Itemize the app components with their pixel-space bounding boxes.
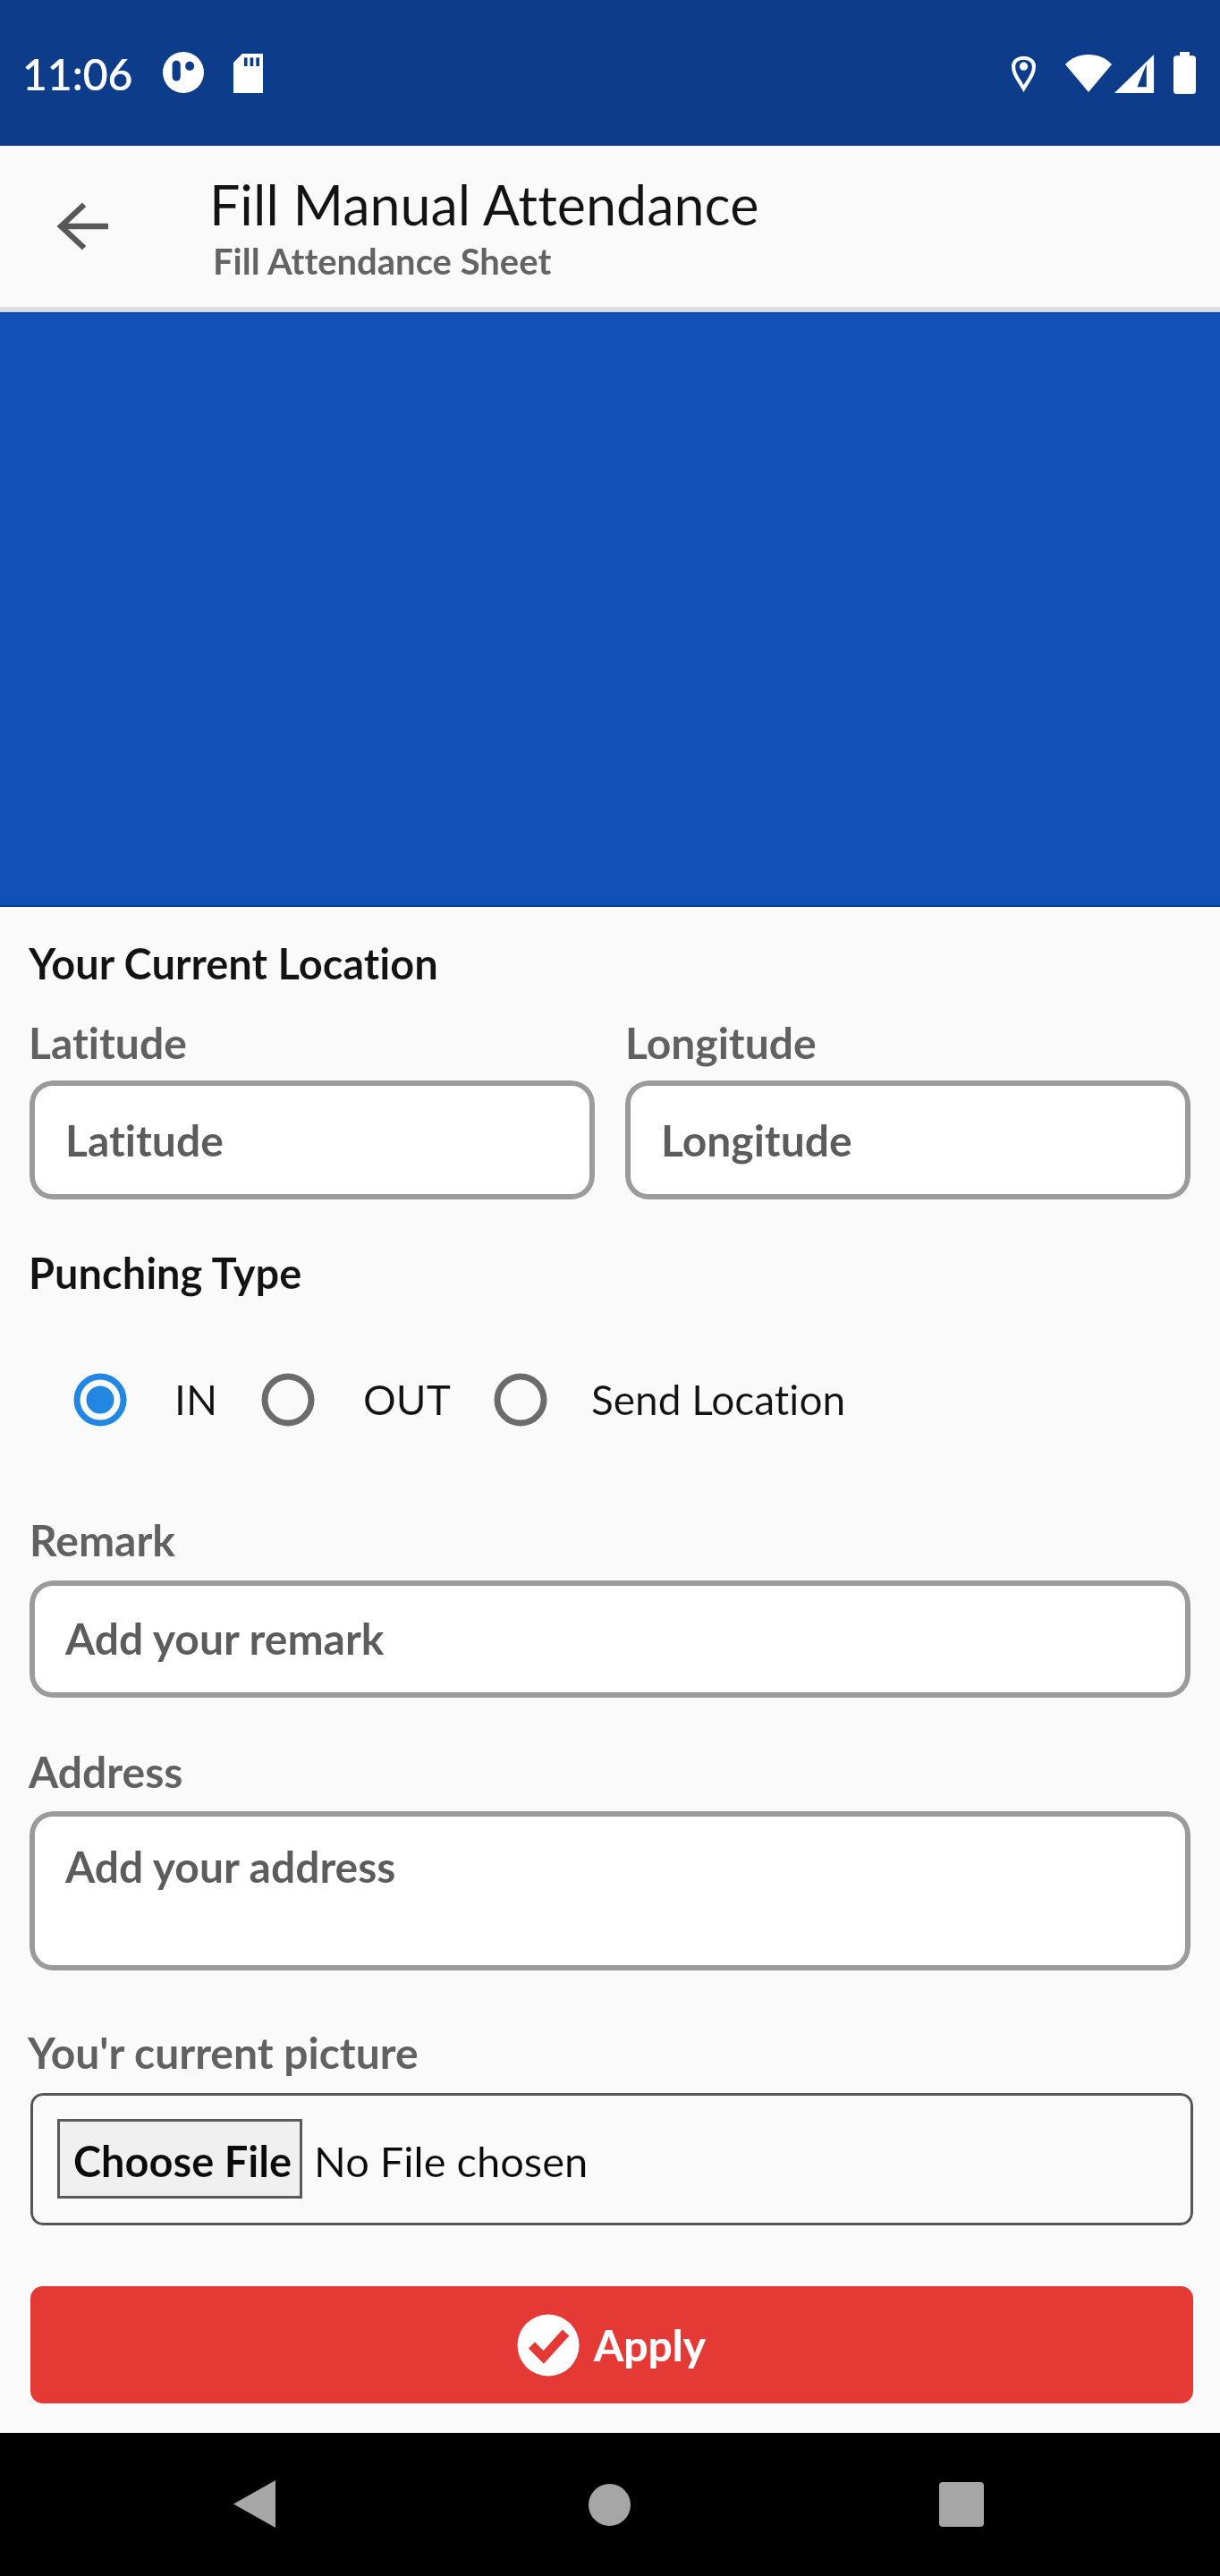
staticText: IN [174,1375,218,1424]
staticText: Remark [30,1514,176,1566]
button[interactable]: Selected option [68,1368,132,1432]
staticText: Longitude [661,1114,852,1166]
staticText: Latitude [65,1114,224,1166]
button[interactable]: Apply [30,2286,1193,2403]
staticText: OUT [363,1375,451,1424]
button[interactable]: Back [213,2463,295,2546]
staticText: Add your address [65,1841,396,1893]
staticText: 11:06 [22,48,133,100]
button[interactable]: Choose File [30,2093,1193,2225]
staticText: Send Location [591,1375,846,1424]
button[interactable]: Latitude [30,1080,595,1199]
button[interactable]: Add your address [30,1811,1190,1970]
staticText: Choose File [73,2136,292,2186]
staticText: Latitude [29,1017,187,1069]
button[interactable]: Option [488,1368,553,1432]
staticText: Address [29,1746,183,1798]
staticText: You'r current picture [28,2027,419,2079]
button[interactable]: Add your remark [30,1580,1190,1698]
button[interactable]: Longitude [625,1080,1190,1199]
button[interactable]: Option [256,1368,320,1432]
button[interactable]: Recent apps [920,2463,1003,2546]
staticText: Apply [594,2319,707,2371]
button[interactable]: Back [36,189,130,283]
staticText: No File chosen [314,2136,589,2186]
button[interactable]: Home [568,2463,650,2546]
staticText: Fill Manual Attendance [209,172,759,237]
staticText: Your Current Location [29,938,438,988]
staticText: Fill Attendance Sheet [213,240,552,283]
staticText: Add your remark [65,1613,385,1665]
staticText: Punching Type [29,1248,302,1298]
staticText: Longitude [625,1017,817,1069]
